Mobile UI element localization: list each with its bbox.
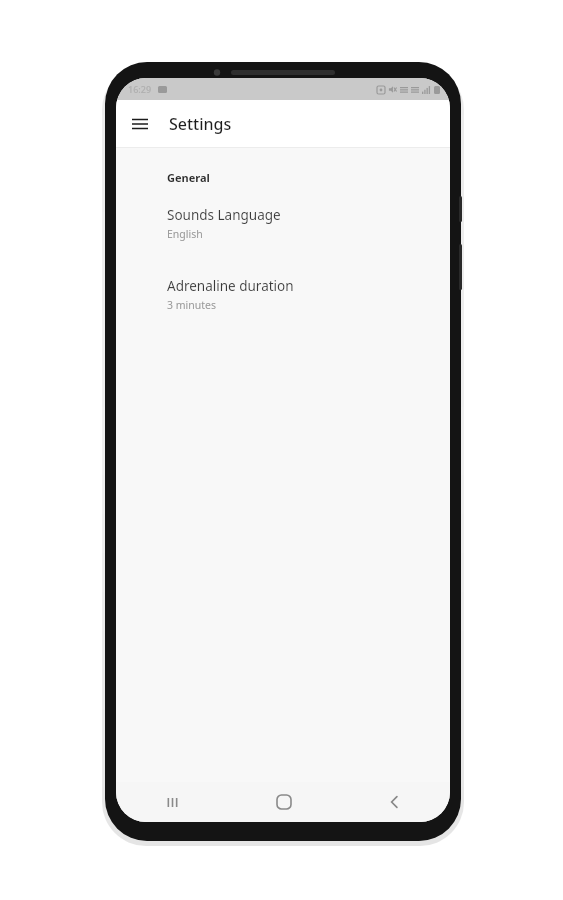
staticText: Adrenaline duration bbox=[167, 277, 294, 295]
staticText: Settings bbox=[169, 113, 232, 135]
button[interactable]: Home bbox=[228, 782, 339, 822]
button[interactable]: Recent apps bbox=[116, 782, 228, 822]
button[interactable]: Adrenaline duration bbox=[116, 275, 450, 314]
staticText: 16:29 bbox=[128, 83, 152, 95]
button[interactable]: Back bbox=[339, 782, 450, 822]
staticText: English bbox=[167, 227, 203, 241]
staticText: General bbox=[167, 170, 210, 185]
button[interactable]: Open navigation menu bbox=[122, 106, 158, 142]
staticText: Sounds Language bbox=[167, 206, 281, 224]
button[interactable]: Sounds Language bbox=[116, 204, 450, 243]
staticText: 3 minutes bbox=[167, 298, 216, 312]
